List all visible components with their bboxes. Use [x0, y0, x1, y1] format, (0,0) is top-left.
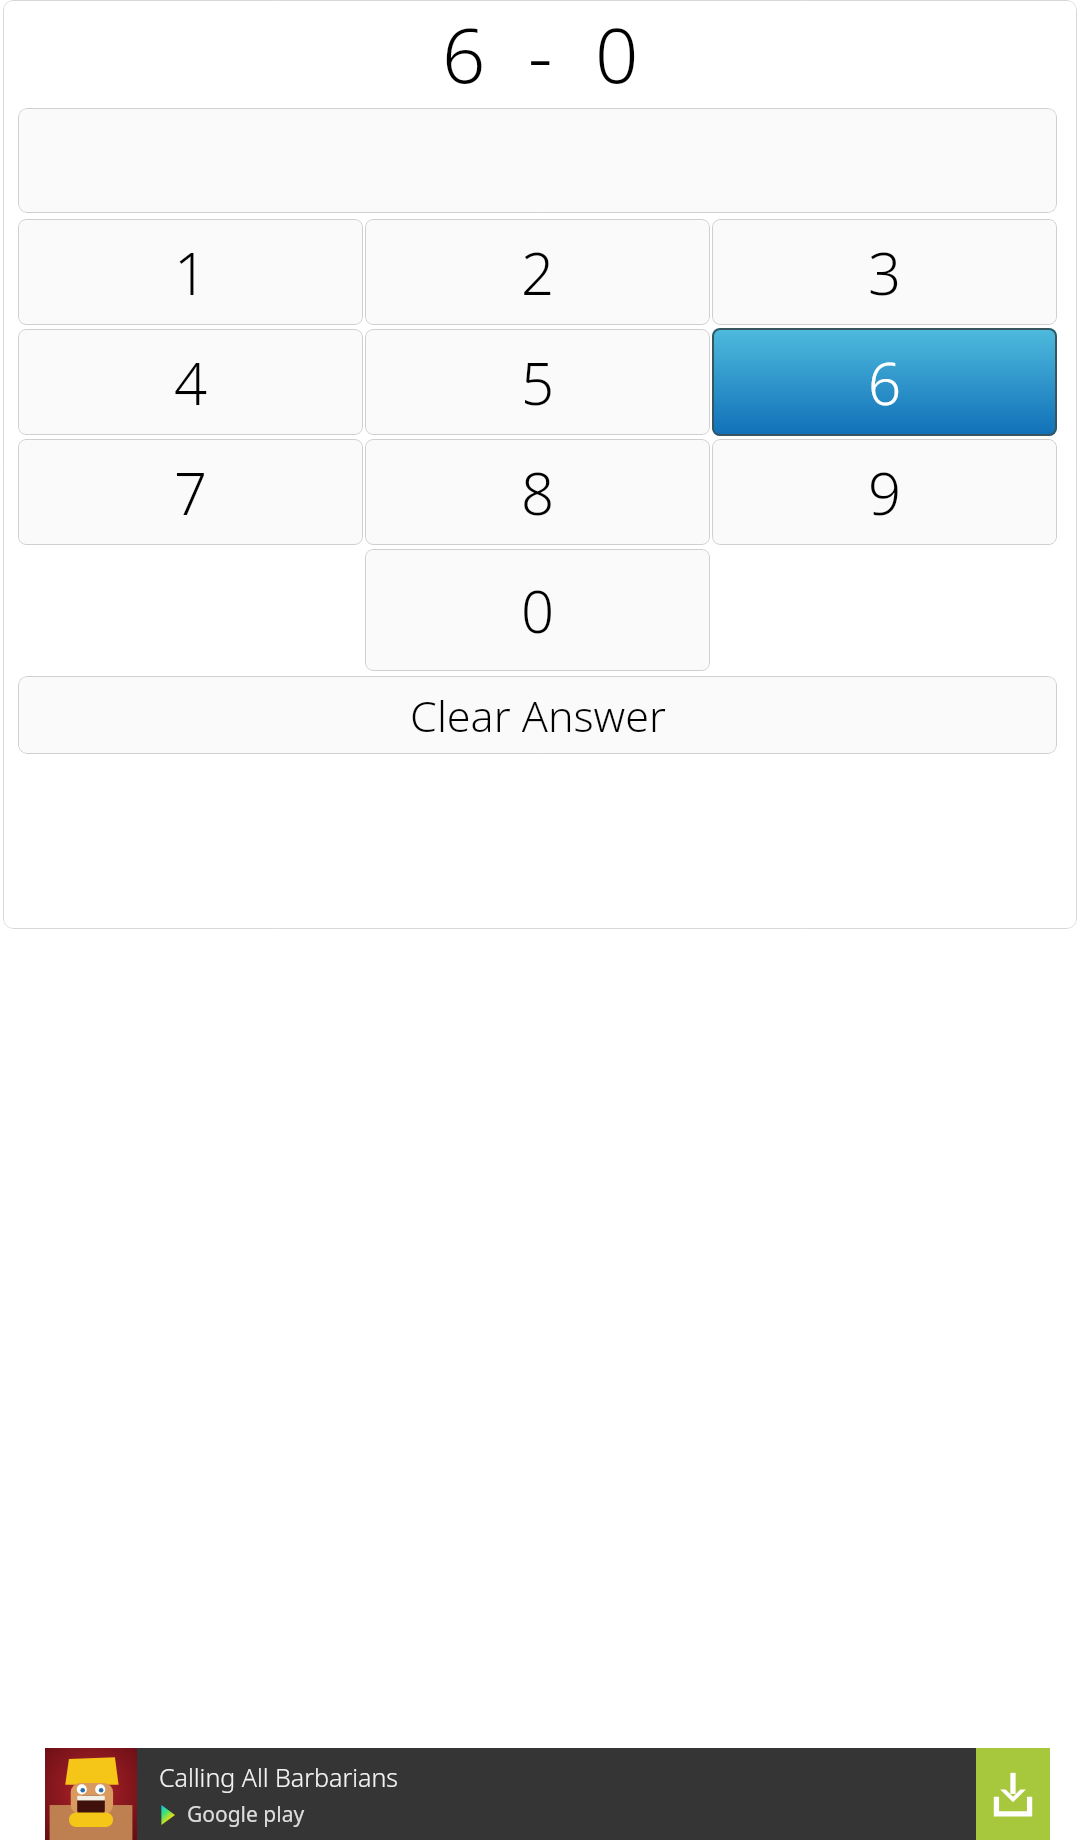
- staticText: 4: [174, 343, 208, 422]
- staticText: 6: [442, 2, 486, 106]
- button[interactable]: 4: [18, 329, 363, 435]
- staticText: 0: [521, 571, 555, 650]
- staticText: 5: [521, 343, 555, 422]
- staticText: 3: [868, 233, 902, 312]
- button[interactable]: 6: [712, 328, 1057, 436]
- staticText: Clear Answer: [410, 686, 666, 745]
- button[interactable]: Clear Answer: [18, 676, 1057, 754]
- staticText: 1: [174, 233, 208, 312]
- staticText: 6: [868, 343, 902, 422]
- staticText: Calling All Barbarians: [159, 1760, 399, 1794]
- button[interactable]: 8: [365, 439, 710, 545]
- button[interactable]: 2: [365, 219, 710, 325]
- button[interactable]: Calling All Barbarians: [45, 1748, 1050, 1840]
- staticText: Google play: [187, 1800, 305, 1829]
- button[interactable]: 3: [712, 219, 1057, 325]
- button[interactable]: 5: [365, 329, 710, 435]
- button[interactable]: 7: [18, 439, 363, 545]
- button[interactable]: Install app: [976, 1748, 1050, 1840]
- staticText: 7: [174, 453, 208, 532]
- staticText: 8: [521, 453, 555, 532]
- staticText: 0: [595, 2, 639, 106]
- button[interactable]: 0: [365, 549, 710, 671]
- staticText: 2: [521, 233, 555, 312]
- staticText: 9: [868, 453, 902, 532]
- staticText: -: [528, 2, 553, 106]
- button[interactable]: [18, 108, 1057, 213]
- button[interactable]: 9: [712, 439, 1057, 545]
- button[interactable]: 1: [18, 219, 363, 325]
